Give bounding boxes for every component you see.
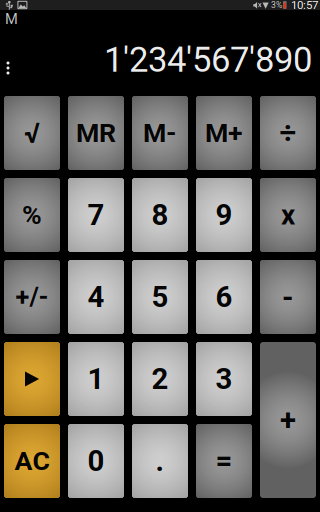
button[interactable]: 4 <box>68 260 124 334</box>
button[interactable]: + <box>260 342 316 498</box>
staticText: . <box>155 444 164 478</box>
staticText: +/- <box>15 282 48 312</box>
button[interactable]: +/- <box>4 260 60 334</box>
staticText: 2 <box>151 362 168 396</box>
staticText: M+ <box>205 117 243 149</box>
staticText: 3% <box>271 0 282 10</box>
staticText: 0 <box>87 444 104 478</box>
button[interactable]: AC <box>4 424 60 498</box>
button[interactable]: 9 <box>196 178 252 252</box>
staticText: - <box>282 280 294 314</box>
staticText: = <box>215 444 232 478</box>
button[interactable]: 0 <box>68 424 124 498</box>
staticText: 5 <box>151 280 168 314</box>
staticText: 6 <box>215 280 232 314</box>
button[interactable]: MR <box>68 96 124 170</box>
staticText: 1 <box>87 362 104 396</box>
staticText: MR <box>76 117 116 149</box>
button[interactable]: = <box>196 424 252 498</box>
staticText: 9 <box>215 198 232 232</box>
staticText: √ <box>24 117 40 149</box>
button[interactable]: 5 <box>132 260 188 334</box>
staticText: M- <box>143 117 177 149</box>
staticText: + <box>280 403 296 437</box>
button[interactable]: 7 <box>68 178 124 252</box>
staticText: ÷ <box>279 116 296 150</box>
staticText: M <box>5 10 18 28</box>
staticText: 10:57 <box>291 0 318 12</box>
button[interactable]: 6 <box>196 260 252 334</box>
button[interactable]: 8 <box>132 178 188 252</box>
button[interactable]: M- <box>132 96 188 170</box>
button[interactable]: ÷ <box>260 96 316 170</box>
staticText: % <box>22 199 42 231</box>
staticText: 1'234'567'890 <box>104 40 312 80</box>
button[interactable]: x <box>260 178 316 252</box>
button[interactable]: 1 <box>68 342 124 416</box>
button[interactable]: . <box>132 424 188 498</box>
button[interactable]: √ <box>4 96 60 170</box>
staticText: 7 <box>87 198 104 232</box>
button[interactable]: 2 <box>132 342 188 416</box>
staticText: x <box>281 199 295 231</box>
staticText: AC <box>14 445 49 477</box>
button[interactable]: More options <box>0 51 16 85</box>
staticText: 8 <box>151 198 168 232</box>
button[interactable]: 3 <box>196 342 252 416</box>
button[interactable]: - <box>260 260 316 334</box>
button[interactable]: M+ <box>196 96 252 170</box>
staticText: 4 <box>87 280 104 314</box>
button[interactable]: % <box>4 178 60 252</box>
button[interactable]: Evaluate <box>4 342 60 416</box>
staticText: 3 <box>215 362 232 396</box>
